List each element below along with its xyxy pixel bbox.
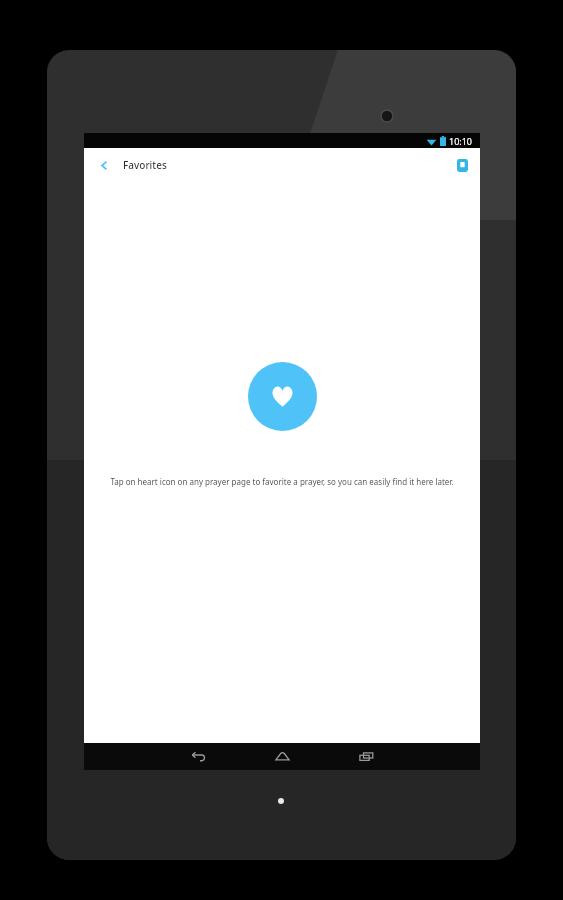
button[interactable]: Home: [240, 743, 324, 770]
button[interactable]: Open book: [451, 154, 473, 176]
staticText: Favorites: [123, 158, 167, 172]
other: Favorite heart: [248, 362, 317, 431]
button[interactable]: Back: [156, 743, 240, 770]
button[interactable]: Recent apps: [324, 743, 408, 770]
button[interactable]: Back: [93, 154, 115, 176]
staticText: Tap on heart icon on any prayer page to …: [106, 476, 458, 487]
staticText: 10:10: [449, 135, 473, 147]
